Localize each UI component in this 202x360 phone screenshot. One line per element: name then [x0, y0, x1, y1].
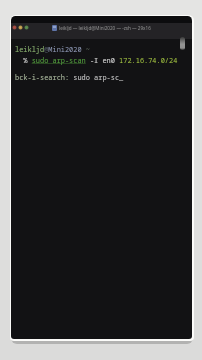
button[interactable]	[12, 25, 17, 30]
button[interactable]	[18, 25, 23, 30]
staticText: bck-i-search: sudo arp-sc_	[15, 73, 124, 82]
staticText: % sudo arp-scan -I en0 172.16.74.0/24	[15, 56, 178, 65]
staticText: leikljd@Mini2020 ~	[15, 45, 90, 54]
button[interactable]: leikljd@Mini2020 ~	[11, 39, 192, 339]
button[interactable]	[24, 25, 29, 30]
button[interactable]: leikljd — leikljd@Mini2020 — -zsh — 29x1…	[11, 23, 192, 39]
staticText: leikljd — leikljd@Mini2020 — -zsh — 29x1…	[59, 25, 151, 31]
